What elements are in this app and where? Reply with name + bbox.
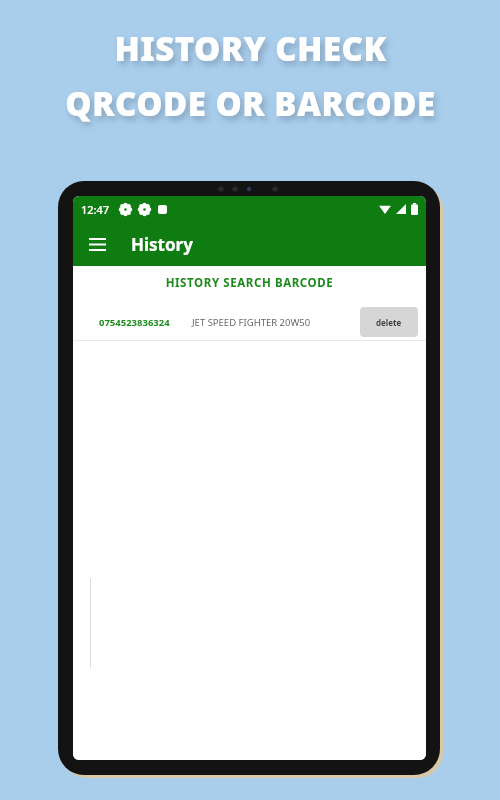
staticText: History (131, 233, 193, 256)
staticText: 12:47 (81, 202, 110, 217)
staticText: QRCODE OR BARCODE (65, 81, 436, 126)
button[interactable]: delete (360, 307, 418, 337)
staticText: delete (376, 317, 402, 328)
staticText: HISTORY CHECK (114, 26, 387, 71)
staticText: 0754523836324 (99, 316, 170, 329)
button[interactable]: 0754523836324 (73, 304, 426, 340)
staticText: JET SPEED FIGHTER 20W50 (192, 316, 311, 329)
staticText: HISTORY SEARCH BARCODE (73, 275, 426, 291)
button[interactable]: Open navigation menu (81, 228, 113, 260)
